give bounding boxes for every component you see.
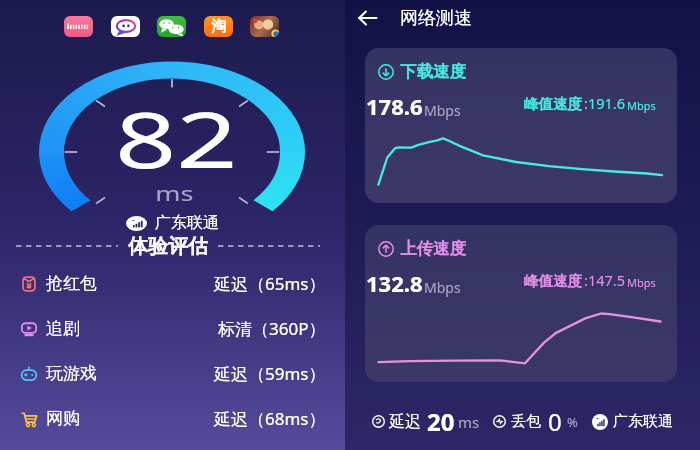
button[interactable]: Back <box>354 5 380 31</box>
staticText: 上传速度 <box>400 238 466 259</box>
staticText: 网络测速 <box>400 7 472 30</box>
staticText: % <box>567 413 578 431</box>
staticText: Mbps <box>627 98 656 113</box>
staticText: 追剧 <box>46 318 80 339</box>
staticText: 丢包 <box>511 412 541 431</box>
staticText: 82 <box>115 86 238 190</box>
staticText: 0 <box>548 405 562 438</box>
staticText: 体验评估 <box>128 234 208 258</box>
staticText: 标清（360P） <box>218 317 326 340</box>
staticText: 延迟（65ms） <box>214 272 326 295</box>
staticText: 延迟 <box>389 412 421 432</box>
staticText: 网购 <box>46 408 80 429</box>
button[interactable]: 玩游戏 <box>0 351 345 396</box>
staticText: 广东联通 <box>155 213 219 233</box>
staticText: 淘 <box>211 17 226 36</box>
button[interactable] <box>157 16 186 37</box>
staticText: :147.5 <box>584 270 625 290</box>
staticText: Mbps <box>424 278 461 297</box>
staticText: 玩游戏 <box>46 363 97 384</box>
staticText: 峰值速度 <box>524 272 582 290</box>
staticText: 132.8 <box>366 268 423 298</box>
staticText: 延迟（68ms） <box>214 407 326 430</box>
button[interactable] <box>250 16 279 37</box>
button[interactable]: 下载速度 <box>365 48 677 203</box>
button[interactable]: 追剧 <box>0 306 345 351</box>
staticText: ms <box>155 181 194 207</box>
staticText: 广东联通 <box>613 412 673 431</box>
staticText: ms <box>458 412 480 432</box>
staticText: Mbps <box>627 275 656 290</box>
button[interactable]: Packet loss <box>493 415 506 428</box>
staticText: 下载速度 <box>400 61 466 82</box>
button[interactable] <box>64 16 93 37</box>
staticText: 178.6 <box>366 91 423 121</box>
staticText: 延迟（59ms） <box>214 362 326 385</box>
staticText: :191.6 <box>584 93 625 113</box>
staticText: 抢红包 <box>46 273 97 294</box>
staticText: Mbps <box>424 101 461 120</box>
button[interactable]: 网购 <box>0 396 345 441</box>
staticText: 峰值速度 <box>524 95 582 113</box>
button[interactable]: 淘 <box>204 16 233 37</box>
staticText: 20 <box>427 405 455 438</box>
button[interactable] <box>111 16 140 37</box>
button[interactable]: Latency <box>372 415 385 428</box>
button[interactable]: 抢红包 <box>0 261 345 306</box>
button[interactable]: 上传速度 <box>365 225 677 382</box>
